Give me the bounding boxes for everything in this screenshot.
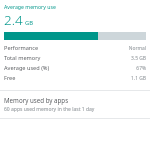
staticText: 1.1 GB [18,75,146,82]
staticText: 67% [52,65,146,72]
button[interactable]: Total memory [0,53,150,63]
button[interactable]: Free [0,73,150,83]
other: Memory usage 67 percent [4,32,146,40]
staticText: 3.5 GB [43,55,146,62]
button[interactable]: Average used (%) [0,63,150,73]
button[interactable]: Performance [0,43,150,53]
staticText: Free [4,74,16,82]
staticText: Performance [4,44,39,52]
button[interactable]: Memory used by apps [0,91,150,118]
staticText: Total memory [4,54,41,62]
staticText: GB [25,19,33,27]
staticText: 60 apps used memory in the last 1 day [4,106,95,113]
staticText: Normal [41,45,146,52]
staticText: 2.4 [4,11,23,29]
staticText: Average used (%) [4,64,50,72]
staticText: Memory used by apps [4,96,69,104]
staticText: Average memory use [4,3,56,10]
